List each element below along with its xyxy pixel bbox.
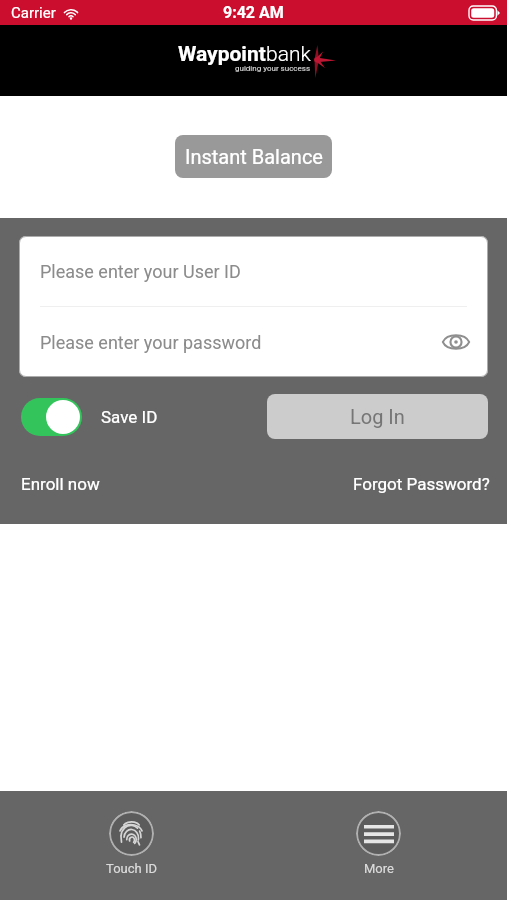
button[interactable]: Log In — [267, 394, 488, 439]
button[interactable]: Show password — [438, 324, 474, 360]
button[interactable]: Enroll now — [21, 474, 100, 494]
button[interactable]: Instant Balance — [175, 135, 332, 178]
staticText: Instant Balance — [185, 145, 323, 168]
button[interactable]: Touch ID login — [106, 811, 157, 876]
button[interactable]: Please enter your User ID — [19, 236, 488, 306]
staticText: More — [364, 861, 394, 876]
staticText: bank — [266, 42, 311, 67]
button[interactable]: Please enter your password — [19, 307, 488, 377]
staticText: Touch ID — [106, 861, 157, 876]
staticText: guiding your success — [235, 64, 311, 73]
staticText: Carrier — [11, 4, 56, 22]
button[interactable]: Forgot Password? — [353, 474, 490, 494]
staticText: Log In — [350, 405, 405, 428]
staticText: Waypoint — [178, 42, 266, 67]
button[interactable]: Save ID toggle — [21, 398, 82, 436]
staticText: Save ID — [101, 407, 158, 427]
staticText: 9:42 AM — [223, 3, 284, 22]
staticText: Forgot Password? — [353, 474, 490, 494]
button[interactable]: More options — [356, 811, 401, 876]
staticText: Please enter your User ID — [40, 261, 241, 282]
staticText: Enroll now — [21, 474, 100, 494]
staticText: Please enter your password — [40, 332, 262, 353]
